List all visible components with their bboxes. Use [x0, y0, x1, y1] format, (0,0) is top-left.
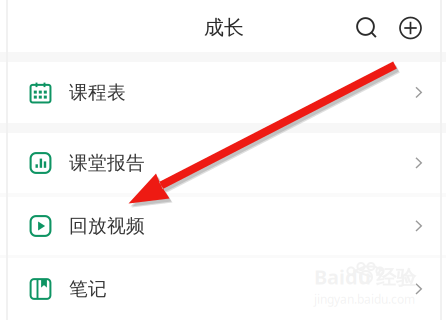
staticText: 笔记 [69, 277, 107, 300]
staticText: jingyan.baidu.com [314, 291, 415, 307]
staticText: 课程表 [69, 81, 126, 104]
button[interactable]: 课堂报告 [0, 133, 446, 193]
button[interactable]: 笔记 [0, 258, 446, 320]
staticText: Baidu 经验 [314, 263, 416, 290]
staticText: 课堂报告 [69, 151, 145, 174]
button[interactable]: Add [398, 16, 422, 40]
staticText: 回放视频 [69, 214, 145, 237]
button[interactable]: 回放视频 [0, 197, 446, 255]
button[interactable]: Search [353, 14, 379, 40]
staticText: 成长 [204, 15, 244, 40]
button[interactable]: 课程表 [0, 62, 446, 123]
